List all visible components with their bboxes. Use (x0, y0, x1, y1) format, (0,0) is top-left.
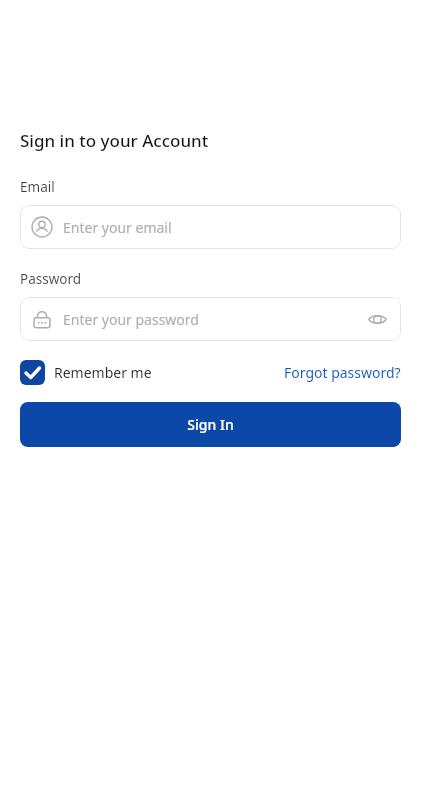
button[interactable]: Enter your email (20, 205, 401, 249)
button[interactable]: Enter your password (20, 297, 401, 341)
button[interactable]: Forgot password? (284, 363, 401, 382)
staticText: Email (20, 178, 55, 196)
staticText: Forgot password? (284, 363, 401, 382)
staticText: Remember me (54, 363, 152, 382)
staticText: Enter your password (63, 310, 364, 329)
staticText: Sign In (187, 415, 234, 434)
staticText: Sign in to your Account (20, 129, 209, 152)
button[interactable]: Sign In (20, 402, 401, 447)
staticText: Password (20, 270, 82, 288)
staticText: Enter your email (63, 218, 390, 237)
button[interactable]: Show password (364, 306, 390, 332)
button[interactable]: Remember me (20, 360, 152, 385)
